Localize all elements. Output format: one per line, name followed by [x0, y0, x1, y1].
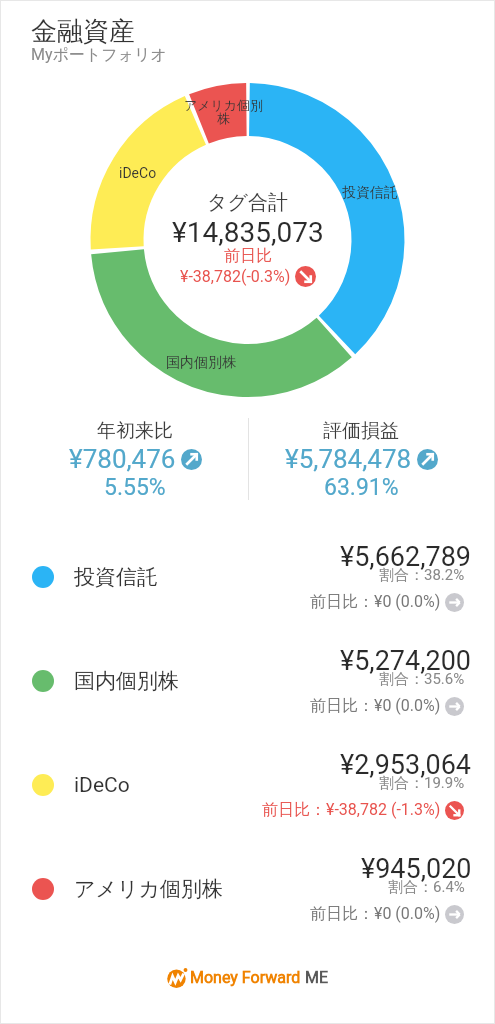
button[interactable]: 評価損益 — [248, 411, 474, 505]
staticText: ¥945,020 — [361, 853, 472, 885]
button[interactable]: アメリカ個別株 — [1, 837, 494, 941]
staticText: 国内個別株 — [74, 668, 179, 694]
staticText: 前日比：¥0 (0.0%) — [310, 696, 441, 716]
staticText: ¥2,953,064 — [340, 749, 472, 781]
button[interactable]: 国内個別株 — [1, 629, 494, 733]
other: 減少 — [445, 801, 464, 820]
staticText: ¥5,274,200 — [340, 645, 472, 677]
staticText: 割合：6.4% — [388, 878, 465, 897]
staticText: ¥14,835,073 — [172, 216, 324, 249]
staticText: Money Forward — [190, 968, 301, 987]
staticText: iDeCo — [119, 165, 157, 181]
staticText: Myポートフォリオ — [31, 45, 167, 65]
other: 詳細 — [445, 905, 464, 924]
other: Money Forward ME — [167, 967, 188, 988]
other: 減少 — [295, 266, 316, 287]
staticText: ¥-38,782(-0.3%) — [180, 267, 291, 286]
staticText: 割合：19.9% — [379, 774, 465, 793]
staticText: ¥5,662,789 — [340, 541, 472, 573]
other: 詳細 — [445, 697, 464, 716]
staticText: ¥5,784,478 — [285, 444, 412, 474]
staticText: 投資信託 — [342, 184, 398, 202]
other: 増加 — [181, 449, 202, 470]
staticText: アメリカ個別株 — [74, 876, 223, 902]
staticText: 63.91% — [324, 474, 399, 501]
staticText: ME — [305, 968, 329, 987]
staticText: 金融資産 — [31, 15, 135, 48]
staticText: アメリカ個別 株 — [177, 97, 270, 127]
staticText: 前日比：¥0 (0.0%) — [310, 592, 441, 612]
staticText: 投資信託 — [74, 564, 158, 590]
other: 詳細 — [445, 593, 464, 612]
other: 増加 — [417, 449, 438, 470]
staticText: ¥780,476 — [69, 444, 176, 474]
staticText: 評価損益 — [323, 419, 399, 443]
staticText: 国内個別株 — [166, 354, 236, 372]
staticText: 前日比：¥-38,782 (-1.3%) — [262, 800, 441, 820]
button[interactable]: iDeCo — [1, 733, 494, 837]
button[interactable]: Money Forward ME — [167, 967, 329, 988]
staticText: 割合：35.6% — [379, 670, 465, 689]
button[interactable]: タグ別資産構成グラフ — [1, 1, 494, 401]
staticText: タグ合計 — [207, 190, 288, 215]
staticText: 年初来比 — [97, 419, 173, 443]
staticText: iDeCo — [74, 773, 130, 798]
staticText: 5.55% — [104, 474, 166, 501]
staticText: 前日比 — [224, 246, 272, 266]
staticText: 前日比：¥0 (0.0%) — [310, 904, 441, 924]
button[interactable]: 年初来比 — [22, 411, 248, 505]
staticText: 割合：38.2% — [379, 566, 465, 585]
button[interactable]: 投資信託 — [1, 525, 494, 629]
